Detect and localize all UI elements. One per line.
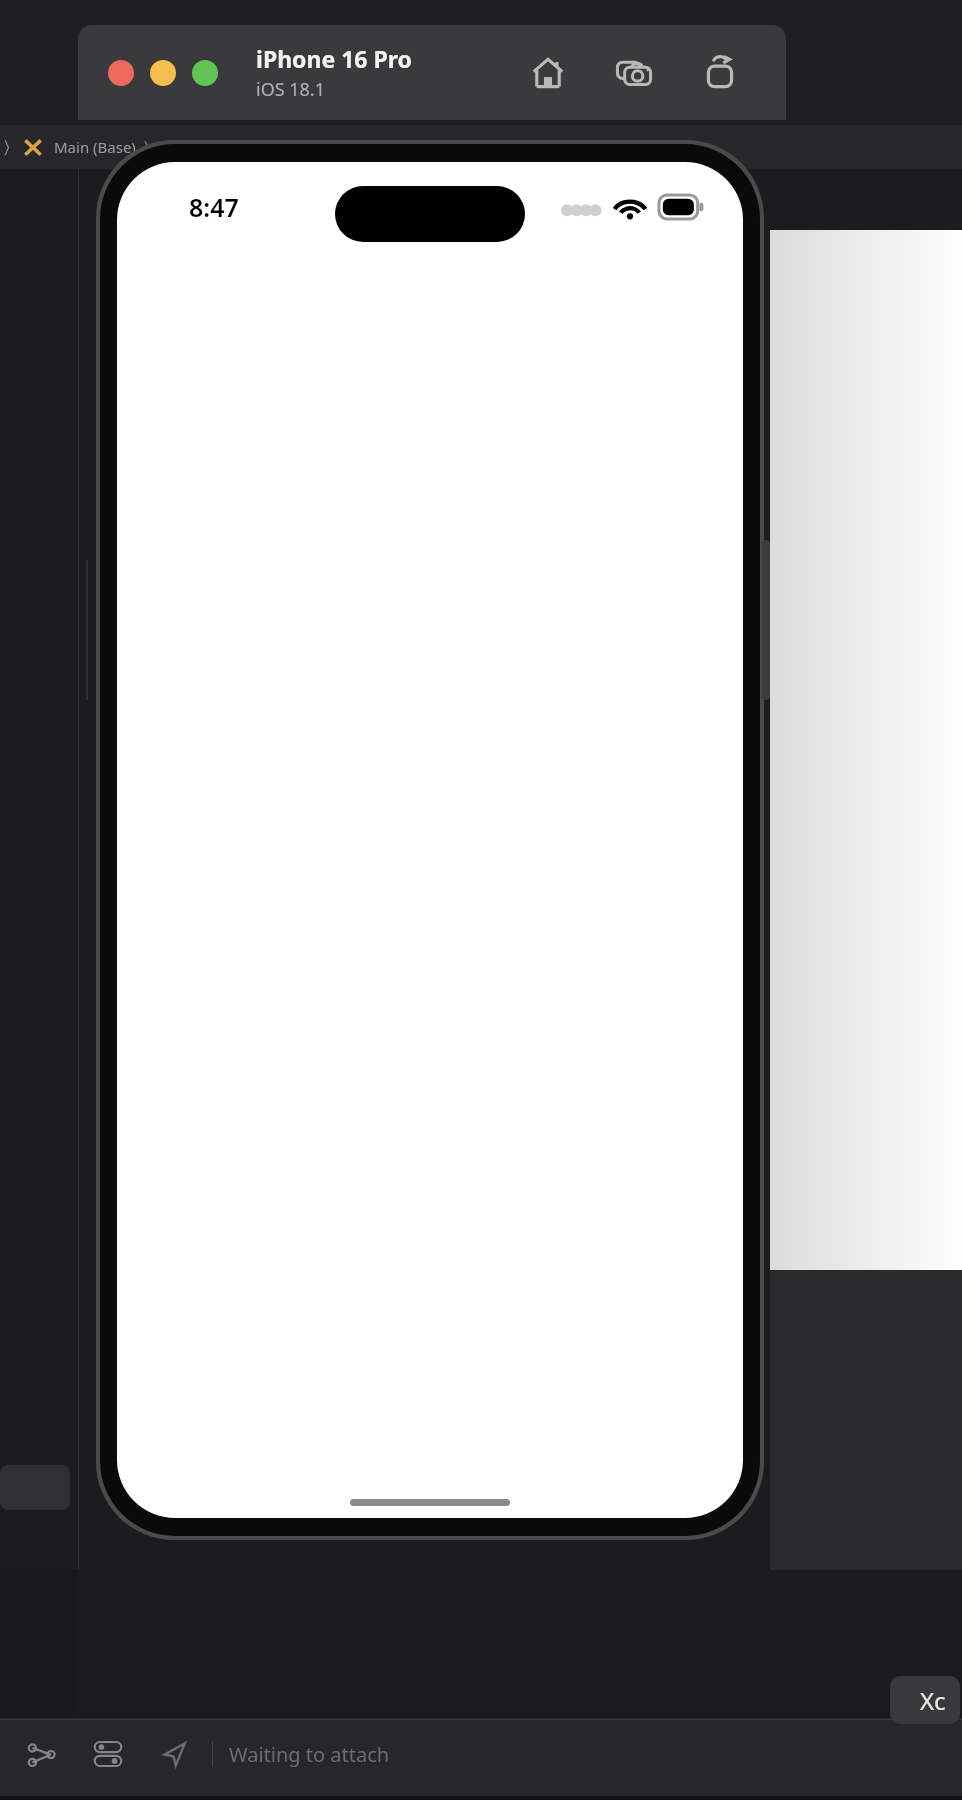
staticText: iPhone 16 Pro bbox=[256, 43, 412, 74]
button[interactable]: Rotate bbox=[694, 47, 746, 99]
staticText: 8:47 bbox=[189, 190, 239, 224]
staticText: Main (Base) bbox=[54, 137, 136, 157]
staticText: Waiting to attach bbox=[229, 1741, 390, 1768]
button[interactable]: Xc bbox=[890, 1676, 960, 1724]
staticText: iOS 18.1 bbox=[256, 77, 325, 102]
button[interactable]: Home bbox=[522, 47, 574, 99]
staticText: 〉 bbox=[4, 139, 10, 156]
button[interactable]: Zoom bbox=[192, 60, 218, 86]
button[interactable]: Hierarchy bbox=[18, 1730, 66, 1778]
button[interactable]: Toggles bbox=[84, 1730, 132, 1778]
button[interactable]: Close bbox=[108, 60, 134, 86]
button[interactable]: Minimize bbox=[150, 60, 176, 86]
staticText: Xc bbox=[920, 1684, 946, 1717]
button[interactable]: Screenshot bbox=[608, 47, 660, 99]
staticText: 〉 bbox=[144, 140, 149, 155]
button[interactable]: Location bbox=[150, 1730, 198, 1778]
